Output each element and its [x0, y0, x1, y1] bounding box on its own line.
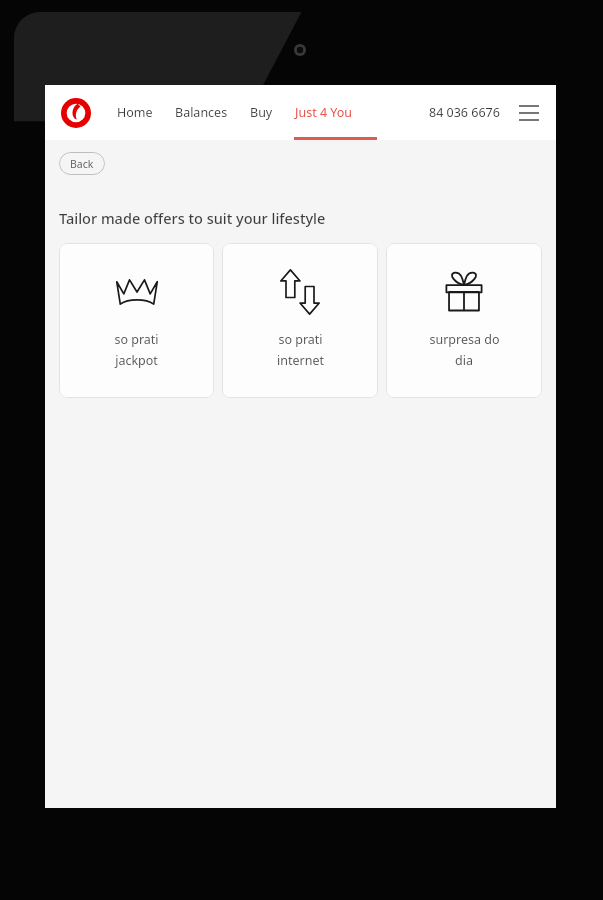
button[interactable]: Menu [516, 100, 542, 126]
staticText: so prati [278, 331, 323, 348]
staticText: Home [117, 104, 153, 121]
button[interactable]: Back [59, 152, 105, 175]
button[interactable]: so prati [222, 243, 378, 398]
button[interactable]: Home [117, 98, 153, 127]
staticText: so prati [114, 331, 159, 348]
button[interactable]: Vodafone home [59, 96, 93, 130]
button[interactable]: Buy [250, 98, 273, 127]
button[interactable]: surpresa do [386, 243, 542, 398]
staticText: surpresa do [429, 331, 500, 348]
staticText: 84 036 6676 [429, 104, 500, 121]
button[interactable]: Just 4 You [295, 98, 353, 127]
staticText: internet [277, 352, 324, 369]
staticText: Tailor made offers to suit your lifestyl… [59, 208, 326, 228]
staticText: Back [70, 157, 94, 171]
staticText: Balances [175, 104, 228, 121]
staticText: Buy [250, 104, 273, 121]
button[interactable]: so prati [59, 243, 214, 398]
staticText: Just 4 You [295, 104, 353, 121]
staticText: jackpot [115, 352, 158, 369]
staticText: dia [455, 352, 473, 369]
button[interactable]: Balances [175, 98, 228, 127]
